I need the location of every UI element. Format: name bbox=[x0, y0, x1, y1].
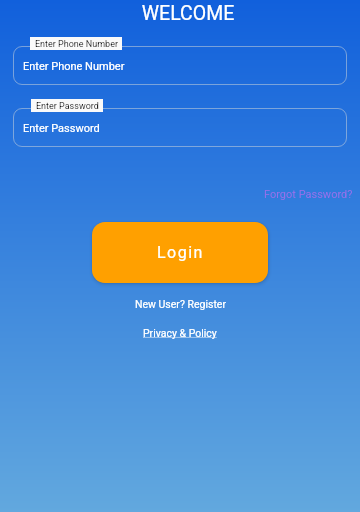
button[interactable]: Login bbox=[92, 222, 268, 283]
button[interactable]: Enter Password bbox=[13, 108, 347, 147]
staticText: Privacy & Policy bbox=[143, 327, 217, 339]
staticText: Enter Phone Number bbox=[35, 39, 118, 50]
button[interactable]: Enter Phone Number bbox=[13, 46, 347, 85]
button[interactable]: New User? Register bbox=[135, 298, 226, 310]
staticText: WELCOME bbox=[8, 2, 360, 25]
button[interactable]: Privacy & Policy bbox=[143, 327, 217, 339]
button[interactable]: Forgot Password? bbox=[264, 188, 353, 201]
staticText: Forgot Password? bbox=[264, 188, 353, 201]
staticText: Login bbox=[157, 243, 204, 262]
staticText: Enter Phone Number bbox=[23, 60, 125, 73]
staticText: Enter Password bbox=[23, 122, 100, 135]
staticText: New User? Register bbox=[135, 298, 226, 310]
staticText: Enter Password bbox=[36, 101, 99, 112]
